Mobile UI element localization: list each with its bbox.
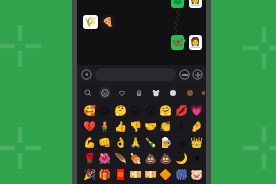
button[interactable]: Stickers [179,69,190,80]
staticText: 👎 [129,121,142,133]
staticText: 🤔 [114,105,127,117]
staticText: 👩‍💼 [189,37,202,49]
staticText: ☀️ [192,153,202,165]
button[interactable]: Sticker [101,15,115,29]
staticText: 💋 [175,105,188,117]
staticText: 🎉 [83,169,96,181]
button[interactable]: 👌 [114,136,127,149]
staticText: 🧍 [98,121,111,133]
staticText: 👑 [190,137,203,149]
staticText: 😗 [145,105,156,117]
staticText: 🍖 [129,153,142,165]
button[interactable]: 🤗 [159,104,172,117]
button[interactable]: Food [167,87,179,99]
staticText: 👏 [159,121,172,133]
staticText: ✌️ [177,121,186,133]
button[interactable]: Back [81,69,92,80]
button[interactable]: 🙏 [129,136,142,149]
button[interactable]: 😗 [144,104,157,117]
button[interactable]: Animals [150,87,162,99]
button[interactable]: People [133,87,145,99]
staticText: 🤗 [159,105,172,117]
staticText: 🥰 [83,105,96,117]
button[interactable]: 💗 [190,104,203,117]
staticText: 🔶 [159,169,172,181]
button[interactable]: 👑 [190,136,203,149]
button[interactable]: 🌺 [98,152,111,165]
button[interactable]: 🤔 [114,104,127,117]
button[interactable]: Sticker [171,0,184,8]
staticText: 👊 [98,137,111,149]
staticText: 🌺 [98,153,111,165]
staticText: 🤌 [190,121,203,133]
button[interactable]: Attach [192,69,203,80]
button[interactable]: 💪 [83,136,96,149]
staticText: 💪 [83,137,96,149]
staticText: 🤝 [144,121,157,133]
button[interactable]: 🧧 [114,168,127,181]
button[interactable]: 💴 [144,168,157,181]
button[interactable]: 🍖 [129,152,142,165]
staticText: 💩 [144,153,157,165]
button[interactable]: 💋 [175,104,188,117]
staticText: 💴 [144,169,157,181]
staticText: 🌾 [84,16,97,28]
staticText: 🌹 [83,153,96,165]
button[interactable]: Sticker [171,35,184,50]
staticText: 😐 [130,105,141,117]
staticText: 🧧 [114,169,127,181]
button[interactable]: 👏 [159,120,172,133]
button[interactable]: 😐 [129,104,142,117]
staticText: 👌 [114,137,127,149]
staticText: 👍 [114,121,127,133]
staticText: 💔 [83,121,96,133]
button[interactable]: 💩 [159,152,172,165]
staticText: 🪶 [114,153,127,165]
staticText: 🌲 [172,0,184,6]
button[interactable]: 😊 [98,104,111,117]
button[interactable]: 🌹 [83,152,96,165]
button[interactable]: 🔶 [159,168,172,181]
staticText: 😊 [99,105,110,117]
button[interactable]: Travel [201,87,206,99]
staticText: 🍕 [102,17,114,28]
button[interactable]: 🍺 [159,136,172,149]
staticText: 🦋 [172,37,184,48]
button[interactable]: 💔 [83,120,96,133]
staticText: ☕ [177,137,187,149]
button[interactable]: 🍾 [144,136,157,149]
staticText: 🌙 [175,153,188,165]
button[interactable]: 👎 [129,120,142,133]
button[interactable]: Favorites [116,87,128,99]
button[interactable]: 🪶 [114,152,127,165]
button[interactable]: 🤌 [190,120,203,133]
staticText: 🎁 [98,169,111,181]
staticText: 🍺 [159,137,172,149]
button[interactable]: 🌙 [175,152,188,165]
button[interactable]: Search [82,87,94,99]
staticText: 🐷 [190,169,203,181]
button[interactable]: ☀️ [190,152,203,165]
button[interactable]: 💩 [144,152,157,165]
button[interactable]: 🎉 [83,168,96,181]
button[interactable]: 🥰 [83,104,96,117]
staticText: 💩 [159,153,172,165]
staticText: 💴 [129,169,142,181]
button[interactable]: 👍 [114,120,127,133]
button[interactable]: ☕ [175,136,188,149]
staticText: 🙏 [129,137,142,149]
button[interactable]: 👊 [98,136,111,149]
staticText: 💗 [190,105,203,117]
button[interactable]: 🐷 [190,168,203,181]
button[interactable]: 🎆 [175,168,188,181]
button[interactable]: 🤝 [144,120,157,133]
button[interactable]: 🧍 [98,120,111,133]
button[interactable]: 🎁 [98,168,111,181]
staticText: 👩‍💼 [189,0,202,7]
button[interactable]: Smileys [99,87,111,99]
button[interactable]: Sticker [83,15,98,29]
button[interactable]: 💴 [129,168,142,181]
button[interactable]: Activity [184,87,196,99]
